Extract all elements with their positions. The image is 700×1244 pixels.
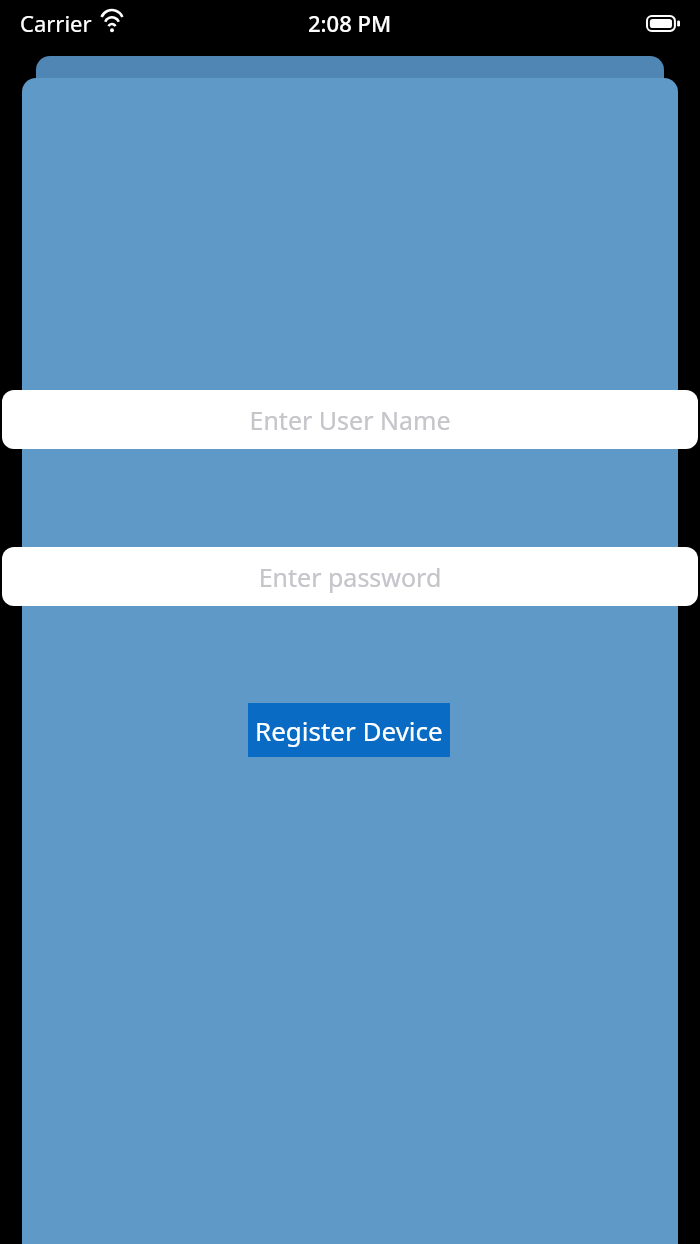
- staticText: Carrier: [20, 8, 92, 38]
- staticText: 2:08 PM: [308, 8, 392, 38]
- button[interactable]: Enter User Name: [2, 390, 698, 449]
- other: Wi-Fi signal: [100, 14, 124, 32]
- button[interactable]: Register Device: [248, 703, 450, 757]
- button[interactable]: Enter password: [2, 547, 698, 606]
- other: Battery full: [646, 15, 680, 32]
- staticText: Enter User Name: [18, 403, 682, 437]
- staticText: Enter password: [18, 560, 682, 594]
- staticText: Register Device: [255, 713, 443, 748]
